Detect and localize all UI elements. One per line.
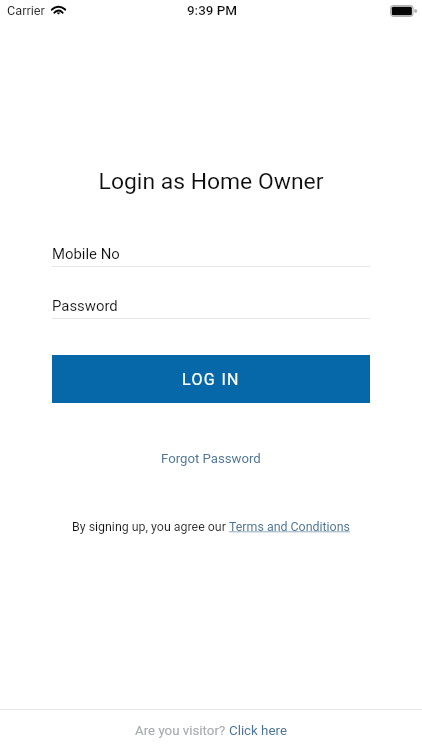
button[interactable]: Forgot Password (151, 446, 271, 471)
button[interactable]: Click here (229, 723, 287, 739)
staticText: Password (52, 297, 118, 314)
staticText: Login as Home Owner (0, 168, 422, 195)
other: Battery full (390, 5, 417, 17)
button[interactable]: Mobile No (52, 237, 370, 275)
staticText: Are you visitor? (135, 723, 229, 739)
staticText: By signing up, you agree our (72, 519, 229, 534)
staticText: LOG IN (182, 370, 240, 389)
button[interactable]: LOG IN (52, 355, 370, 403)
other: Wi-Fi (51, 5, 66, 16)
staticText: 9:39 PM (187, 3, 238, 19)
button[interactable]: Password (52, 289, 370, 327)
staticText: Forgot Password (161, 451, 261, 466)
staticText: Carrier (7, 3, 45, 18)
staticText: Click here (229, 723, 287, 739)
button[interactable]: Terms and Conditions (229, 519, 350, 534)
staticText: Mobile No (52, 245, 120, 262)
staticText: Terms and Conditions (229, 519, 350, 534)
